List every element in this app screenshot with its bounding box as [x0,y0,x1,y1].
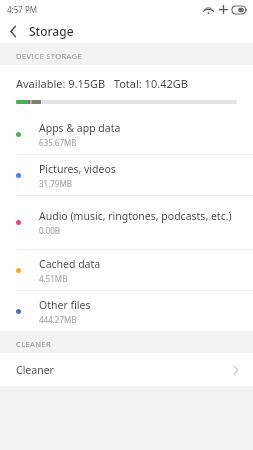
staticText: 0.00B [39,225,61,236]
staticText: 635.67MB [39,137,77,148]
button[interactable]: Cleaner [0,353,253,386]
staticText: Apps & app data [39,121,121,135]
staticText: Cleaner [16,363,233,377]
button[interactable]: Apps & app data [0,114,253,154]
staticText: DEVICE STORAGE [16,51,83,61]
button[interactable]: Back [0,19,26,43]
staticText: Other files [39,298,91,312]
staticText: Pictures, videos [39,162,116,176]
staticText: 4.51MB [39,273,68,284]
staticText: 31.79MB [39,178,72,189]
staticText: CLEANER [16,339,51,349]
staticText: 4:57 PM [7,4,38,15]
button[interactable]: Cached data [0,250,253,290]
button[interactable]: Pictures, videos [0,155,253,195]
staticText: Audio (music, ringtones, podcasts, etc.) [39,209,232,223]
staticText: Storage [29,23,74,39]
staticText: Cached data [39,257,101,271]
staticText: Available: 9.15GB Total: 10.42GB [16,76,188,91]
button[interactable]: Other files [0,291,253,331]
button[interactable]: Available: 9.15GB Total: 10.42GB [0,65,253,114]
staticText: 444.27MB [39,314,77,325]
button[interactable]: Audio (music, ringtones, podcasts, etc.) [0,196,253,249]
